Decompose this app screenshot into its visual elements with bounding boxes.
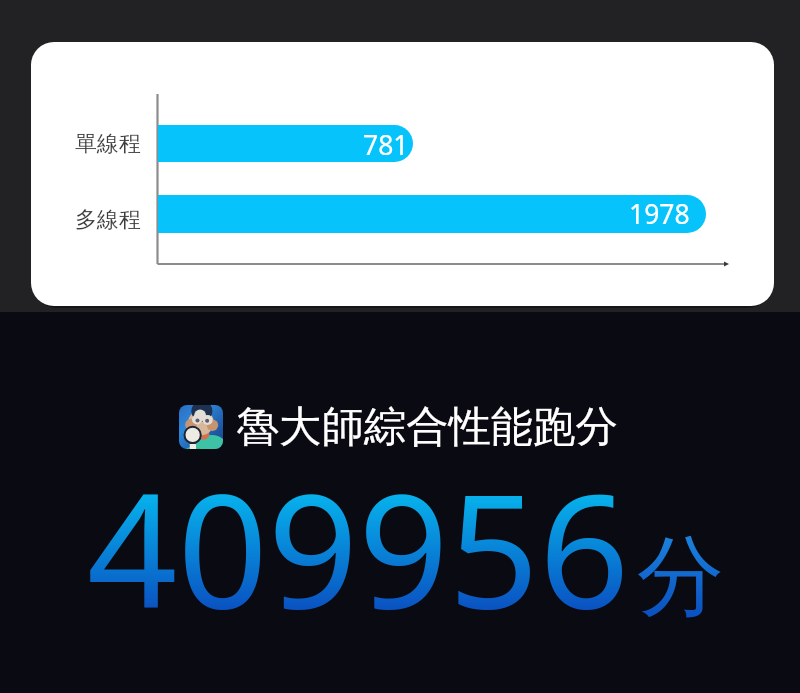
staticText: 多線程 [75,206,141,234]
staticText: 魯大師綜合性能跑分 [237,400,618,453]
other: 魯大師 App Icon [179,405,223,449]
staticText: 1978 [629,196,690,232]
staticText: 分 [637,522,724,632]
staticText: 單線程 [75,130,141,158]
button[interactable] [31,42,774,306]
staticText: 409956 [87,439,630,654]
staticText: 781 [363,127,409,163]
button[interactable]: 魯大師 App Icon [179,400,618,453]
